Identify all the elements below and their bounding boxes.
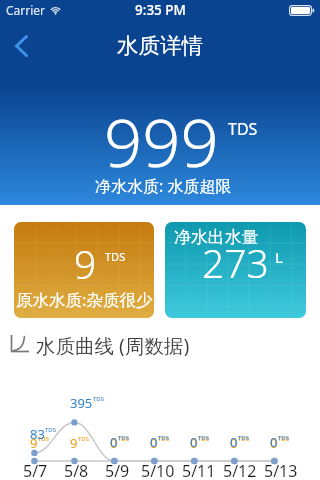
staticText: 原水水质:杂质很少 bbox=[16, 288, 153, 311]
button[interactable]: Back bbox=[0, 25, 42, 67]
staticText: TDS bbox=[93, 395, 105, 403]
staticText: TDS bbox=[198, 434, 210, 442]
staticText: 5/13 bbox=[264, 460, 298, 480]
staticText: 0 bbox=[110, 434, 118, 452]
staticText: 5/7 bbox=[23, 460, 48, 480]
staticText: 0 bbox=[270, 434, 278, 452]
staticText: 9 bbox=[74, 237, 97, 290]
staticText: TDS bbox=[118, 434, 130, 442]
staticText: 9 bbox=[30, 434, 38, 452]
staticText: TDS bbox=[278, 434, 290, 442]
staticText: 水质详情 bbox=[117, 32, 203, 59]
staticText: 0 bbox=[230, 433, 238, 451]
staticText: 999 bbox=[104, 95, 219, 186]
staticText: 9 bbox=[70, 434, 78, 452]
staticText: 0 bbox=[150, 434, 158, 452]
staticText: TDS bbox=[238, 435, 250, 443]
staticText: TDS bbox=[158, 435, 170, 443]
staticText: 0 bbox=[190, 434, 198, 452]
staticText: TDS bbox=[105, 249, 126, 264]
staticText: TDS bbox=[158, 434, 170, 442]
staticText: 5/11 bbox=[182, 460, 216, 480]
staticText: 5/8 bbox=[64, 460, 89, 480]
staticText: 9:35 PM bbox=[135, 1, 186, 19]
button[interactable]: 净水出水量 bbox=[165, 222, 306, 318]
staticText: TDS bbox=[228, 118, 258, 140]
staticText: TDS bbox=[278, 435, 290, 443]
staticText: Carrier bbox=[6, 2, 46, 18]
staticText: 0 bbox=[270, 433, 278, 451]
staticText: 0 bbox=[110, 433, 118, 451]
staticText: TDS bbox=[118, 435, 130, 443]
staticText: 0 bbox=[230, 434, 238, 452]
staticText: 0 bbox=[150, 433, 158, 451]
staticText: 0 bbox=[190, 433, 198, 451]
staticText: 83 bbox=[30, 425, 45, 443]
staticText: TDS bbox=[45, 426, 57, 434]
staticText: 净水出水量 bbox=[174, 227, 259, 248]
staticText: 水质曲线 (周数据) bbox=[36, 332, 190, 356]
staticText: 5/10 bbox=[141, 460, 175, 480]
staticText: TDS bbox=[38, 435, 50, 443]
staticText: 273 bbox=[202, 236, 269, 289]
button[interactable]: 9 bbox=[14, 222, 154, 318]
staticText: 395 bbox=[70, 394, 93, 412]
staticText: 5/12 bbox=[223, 460, 257, 480]
staticText: 净水水质: 水质超限 bbox=[95, 175, 232, 197]
staticText: TDS bbox=[238, 434, 250, 442]
staticText: 5/9 bbox=[105, 460, 130, 480]
staticText: TDS bbox=[78, 435, 90, 443]
staticText: TDS bbox=[198, 435, 210, 443]
staticText: L bbox=[275, 247, 283, 267]
